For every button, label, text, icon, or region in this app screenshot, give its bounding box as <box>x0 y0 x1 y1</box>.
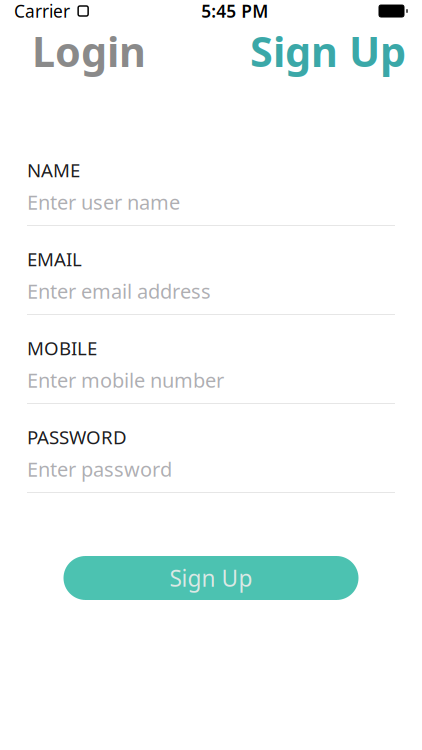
staticText: PASSWORD <box>27 425 127 449</box>
button[interactable]: Sign Up <box>248 23 408 79</box>
button[interactable]: MOBILE <box>27 338 395 404</box>
staticText: Sign Up <box>169 563 252 593</box>
staticText: Enter user name <box>27 189 180 215</box>
button[interactable]: PASSWORD <box>27 427 395 493</box>
staticText: 5:45 PM <box>201 0 268 22</box>
staticText: Sign Up <box>250 24 406 78</box>
button[interactable]: Sign Up <box>63 556 358 600</box>
button[interactable]: Login <box>14 23 164 79</box>
staticText: Carrier <box>14 0 70 22</box>
button[interactable]: NAME <box>27 160 395 226</box>
staticText: Enter mobile number <box>27 367 224 393</box>
staticText: MOBILE <box>27 336 97 360</box>
button[interactable]: EMAIL <box>27 249 395 315</box>
staticText: NAME <box>27 158 80 182</box>
staticText: Login <box>32 24 146 78</box>
staticText: EMAIL <box>27 247 82 271</box>
staticText: Enter password <box>27 456 172 482</box>
staticText: Enter email address <box>27 278 211 304</box>
